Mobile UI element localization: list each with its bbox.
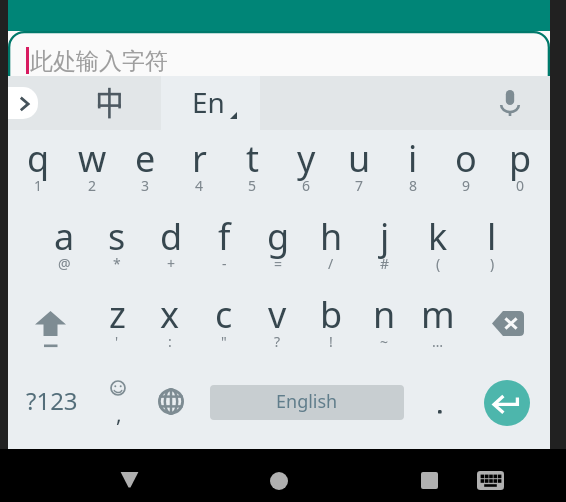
button[interactable]: t [225, 130, 279, 208]
button[interactable]: s [90, 208, 144, 286]
staticText: t [246, 134, 259, 183]
button[interactable]: Emoji [91, 364, 144, 449]
staticText: e [135, 134, 156, 183]
staticText: s [108, 212, 126, 261]
staticText: 3 [141, 176, 150, 195]
staticText: q [27, 134, 50, 183]
staticText: p [509, 134, 532, 183]
staticText: 5 [248, 176, 257, 195]
button[interactable]: 此处输入字符 [8, 31, 550, 77]
staticText: g [267, 212, 290, 261]
staticText: @ [58, 254, 71, 273]
staticText: - [222, 254, 227, 273]
button[interactable]: Backspace [466, 286, 550, 364]
staticText: ) [490, 254, 495, 273]
staticText: k [428, 212, 448, 261]
staticText: English [276, 389, 338, 414]
staticText: u [348, 134, 371, 183]
button[interactable]: Recent apps [405, 449, 453, 502]
button[interactable]: u [332, 130, 386, 208]
staticText: * [113, 254, 121, 273]
button[interactable]: p [493, 130, 547, 208]
button[interactable]: e [118, 130, 172, 208]
staticText: w [78, 134, 107, 183]
staticText: h [320, 212, 343, 261]
staticText: b [320, 290, 343, 339]
button[interactable]: Chinese input [61, 76, 161, 130]
button[interactable]: r [172, 130, 226, 208]
staticText: r [192, 134, 207, 183]
staticText: = [274, 254, 283, 273]
button[interactable]: a [37, 208, 91, 286]
button[interactable]: f [197, 208, 251, 286]
staticText: 8 [409, 176, 418, 195]
button[interactable]: En [161, 76, 260, 130]
button[interactable]: Expand toolbar [8, 87, 38, 119]
staticText: " [221, 332, 227, 351]
button[interactable]: Home [255, 449, 303, 502]
button[interactable]: Hide keyboard [105, 449, 153, 502]
button[interactable]: g [251, 208, 305, 286]
button[interactable]: y [279, 130, 333, 208]
button[interactable]: j [358, 208, 412, 286]
staticText: # [380, 254, 390, 273]
staticText: ?123 [26, 384, 78, 417]
staticText: m [421, 290, 455, 339]
button[interactable]: k [411, 208, 465, 286]
staticText: 此处输入字符 [30, 47, 168, 76]
button[interactable]: b [304, 286, 358, 364]
button[interactable]: n [357, 286, 411, 364]
button[interactable]: m [411, 286, 465, 364]
staticText: z [109, 290, 126, 339]
staticText: / [328, 254, 334, 273]
staticText: ! [329, 332, 333, 351]
staticText: l [487, 212, 497, 261]
button[interactable]: x [143, 286, 197, 364]
button[interactable]: v [250, 286, 304, 364]
staticText: x [160, 290, 180, 339]
staticText: 1 [34, 176, 43, 195]
staticText: + [167, 254, 176, 273]
button[interactable]: i [386, 130, 440, 208]
staticText: 2 [88, 176, 97, 195]
staticText: 4 [195, 176, 204, 195]
button[interactable] [412, 364, 466, 449]
button[interactable]: c [197, 286, 251, 364]
staticText: i [408, 134, 418, 183]
staticText: c [215, 290, 233, 339]
staticText: f [218, 212, 231, 261]
staticText: 9 [462, 176, 471, 195]
button[interactable]: o [439, 130, 493, 208]
button[interactable]: Shift [8, 286, 92, 364]
staticText: o [455, 134, 477, 183]
button[interactable]: z [90, 286, 144, 364]
staticText: n [373, 290, 396, 339]
button[interactable]: l [465, 208, 519, 286]
staticText: En [192, 83, 225, 121]
staticText: … [432, 332, 444, 351]
staticText: y [297, 134, 316, 183]
staticText: , [116, 400, 122, 429]
button[interactable]: Enter [484, 380, 530, 426]
staticText: 0 [516, 176, 525, 195]
staticText: ( [436, 254, 441, 273]
button[interactable]: Voice input [484, 76, 536, 130]
button[interactable]: ?123 [8, 364, 92, 449]
staticText: ? [274, 332, 281, 351]
staticText: : [168, 332, 172, 351]
button[interactable]: Change language [144, 364, 198, 449]
staticText: a [54, 212, 75, 261]
staticText: v [268, 290, 287, 339]
button[interactable]: d [144, 208, 198, 286]
staticText: ~ [380, 332, 389, 351]
button[interactable]: w [65, 130, 119, 208]
staticText: 6 [302, 176, 311, 195]
staticText: j [380, 212, 390, 261]
button[interactable]: q [11, 130, 65, 208]
staticText: ' [115, 332, 119, 351]
staticText: 7 [355, 176, 364, 195]
button[interactable]: English [210, 385, 404, 420]
button[interactable]: h [304, 208, 358, 286]
staticText: d [160, 212, 183, 261]
button[interactable]: Switch keyboard [466, 449, 514, 502]
